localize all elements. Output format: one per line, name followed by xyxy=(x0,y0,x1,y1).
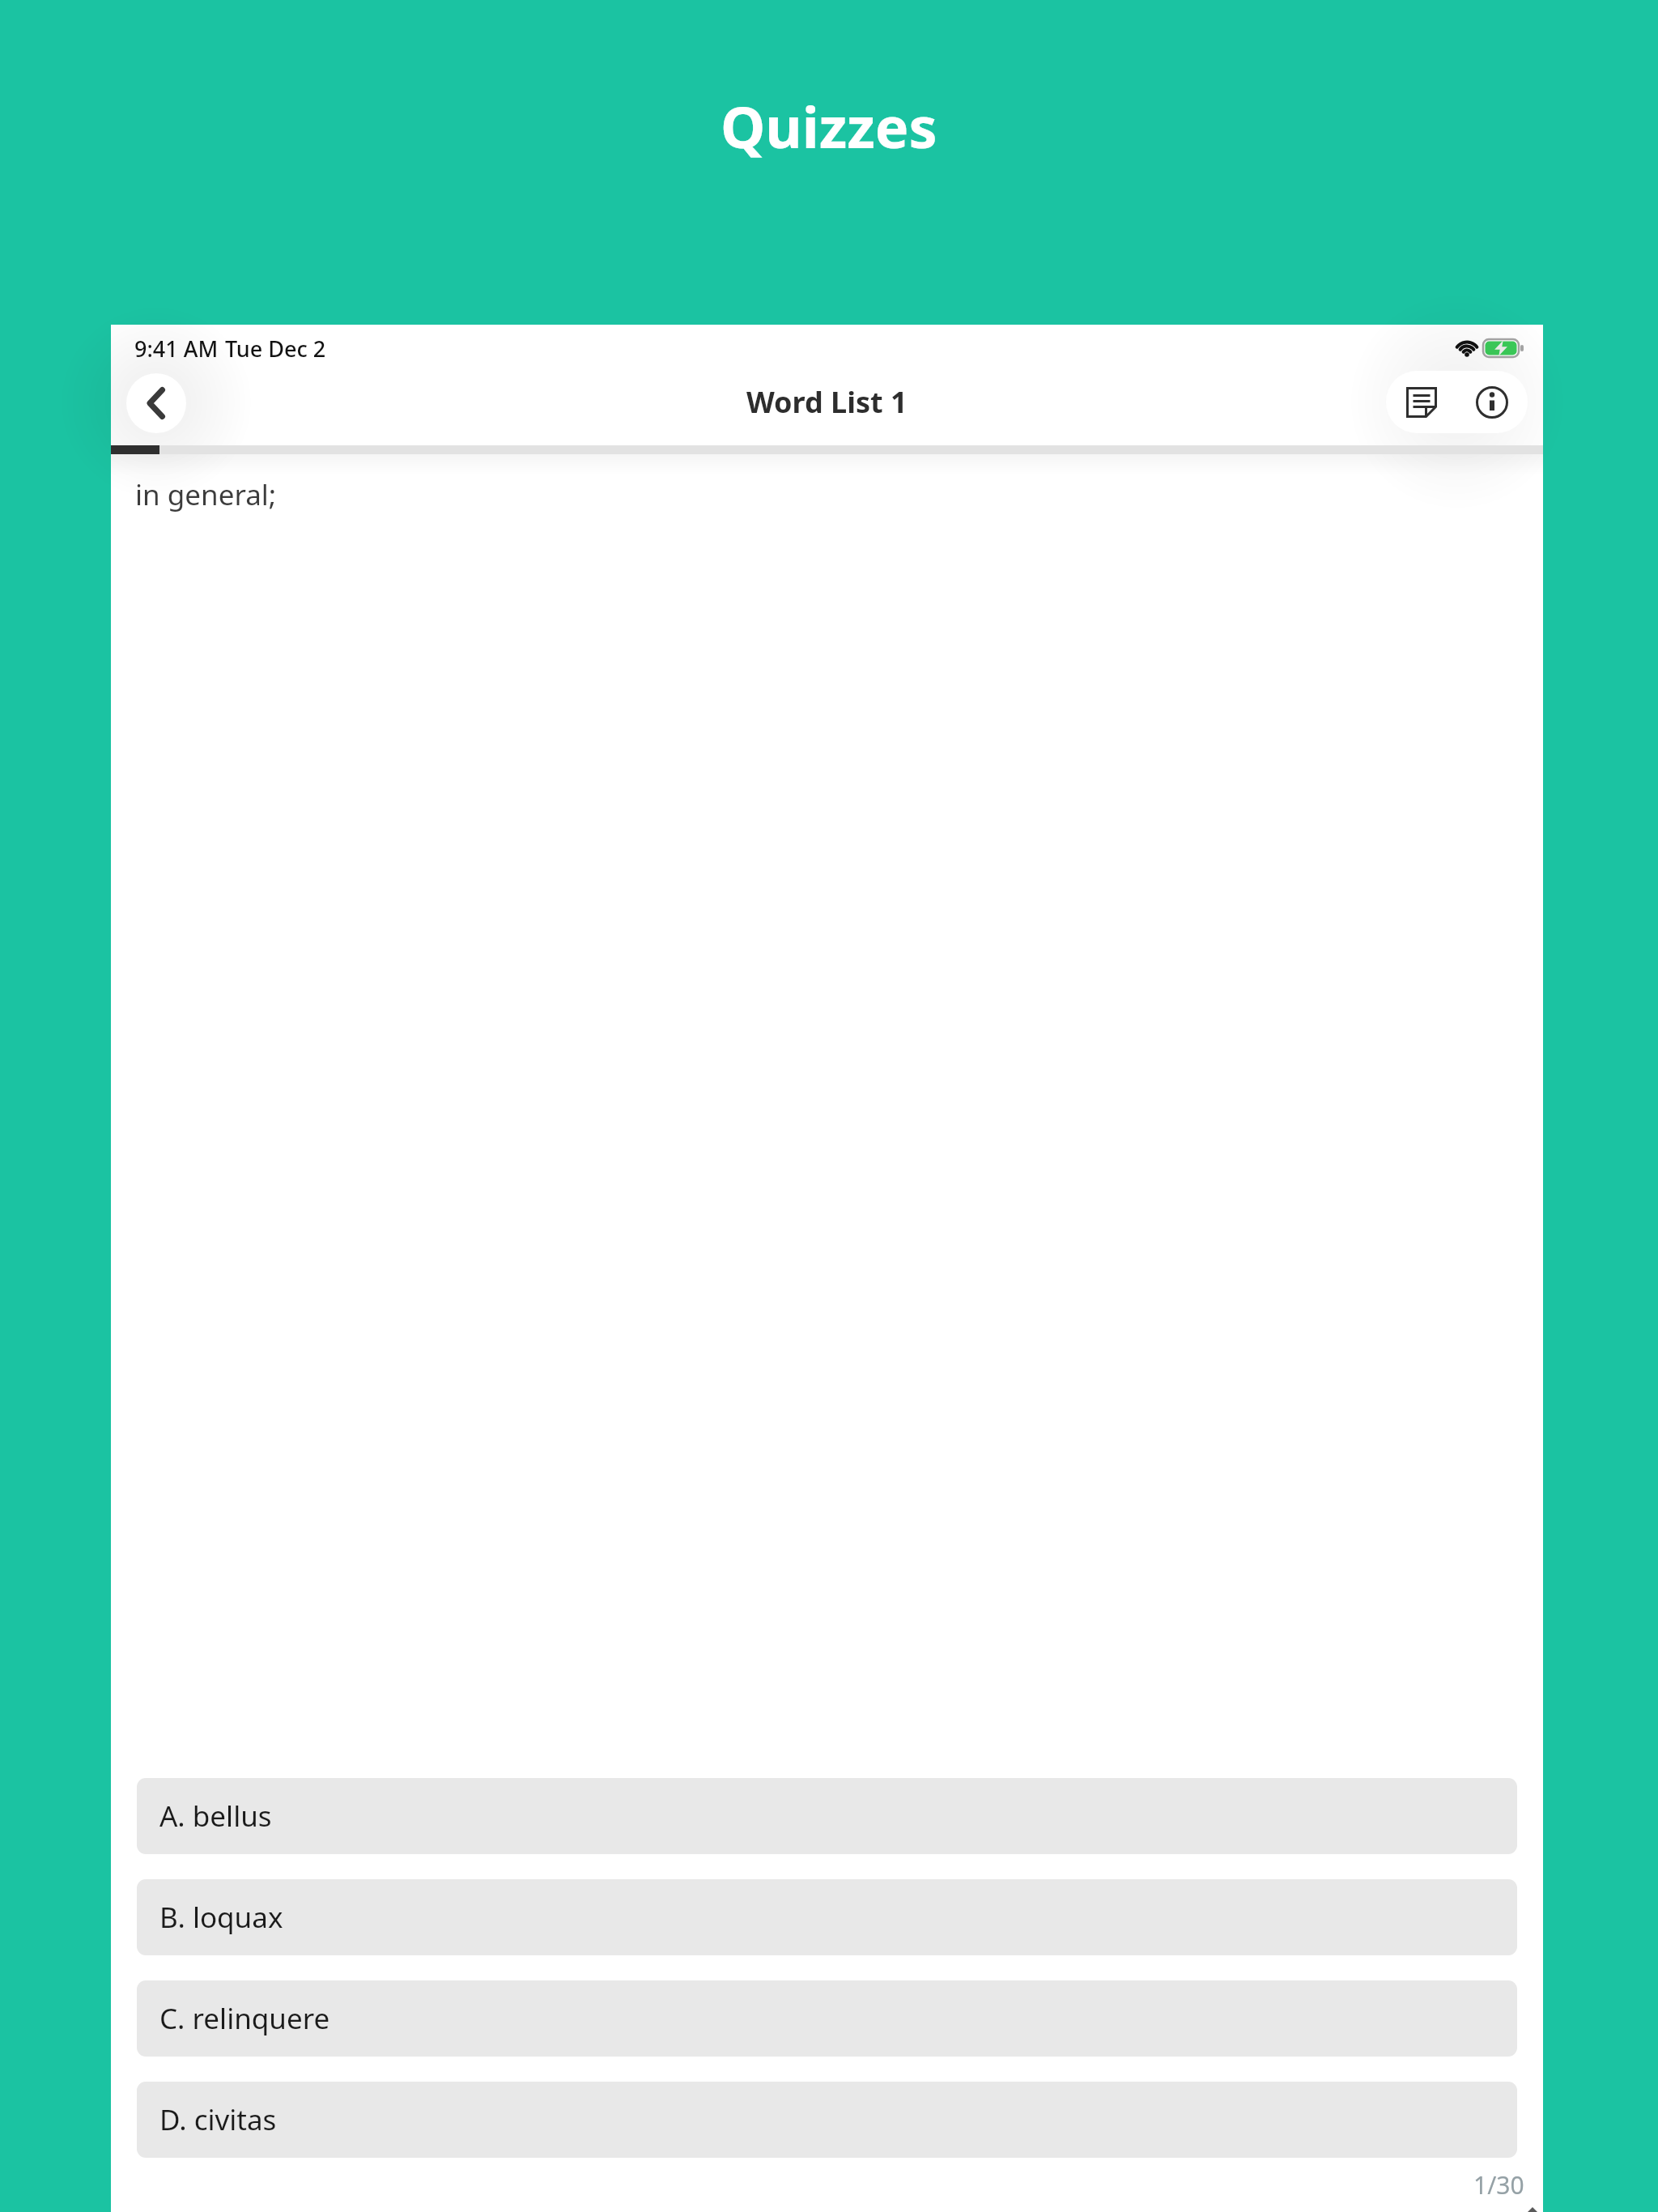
staticText: C. relinquere xyxy=(159,1999,330,2038)
staticText: D. civitas xyxy=(159,2100,277,2139)
button[interactable]: D. civitas xyxy=(137,2082,1517,2158)
staticText: A. bellus xyxy=(159,1797,272,1836)
button[interactable] xyxy=(126,373,186,433)
staticText: Tue Dec 2 xyxy=(225,334,326,364)
button[interactable]: C. relinquere xyxy=(137,1980,1517,2057)
staticText: 9:41 AM xyxy=(134,334,219,364)
staticText: in general; xyxy=(135,475,277,514)
button[interactable]: A. bellus xyxy=(137,1778,1517,1854)
staticText: Quizzes xyxy=(721,87,937,164)
button[interactable] xyxy=(1465,375,1520,430)
button[interactable] xyxy=(1394,375,1449,430)
staticText: Word List 1 xyxy=(746,382,908,422)
staticText: 1/30 xyxy=(1473,2168,1524,2201)
staticText: B. loquax xyxy=(159,1898,283,1937)
button[interactable]: B. loquax xyxy=(137,1879,1517,1955)
